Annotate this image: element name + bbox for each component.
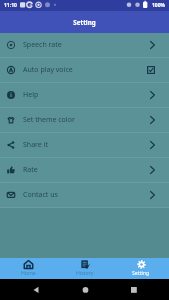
staticText: Auto play voice	[23, 65, 73, 75]
button[interactable]: Set theme color	[0, 108, 169, 132]
button[interactable]: Help	[0, 83, 169, 107]
staticText: Help	[23, 90, 39, 100]
staticText: Rate	[23, 165, 38, 175]
staticText: Setting	[132, 269, 150, 276]
button[interactable]: Rate	[0, 158, 169, 182]
staticText: Home	[21, 269, 36, 276]
staticText: 11:10	[4, 2, 17, 9]
staticText: History	[76, 269, 94, 276]
staticText: 100%	[152, 2, 166, 9]
button[interactable]: Share it	[0, 133, 169, 157]
staticText: Contact us	[23, 190, 58, 200]
button[interactable]: Setting	[113, 258, 169, 279]
staticText: Share it	[23, 140, 48, 150]
staticText: Speech rate	[23, 40, 62, 50]
staticText: Set theme color	[23, 115, 75, 125]
staticText: Setting	[73, 18, 96, 26]
button[interactable]: Auto play voice	[0, 58, 169, 82]
button[interactable]: Contact us	[0, 183, 169, 207]
button[interactable]: Speech rate	[0, 33, 169, 57]
button[interactable]: Home	[0, 258, 57, 279]
button[interactable]: History	[57, 258, 113, 279]
